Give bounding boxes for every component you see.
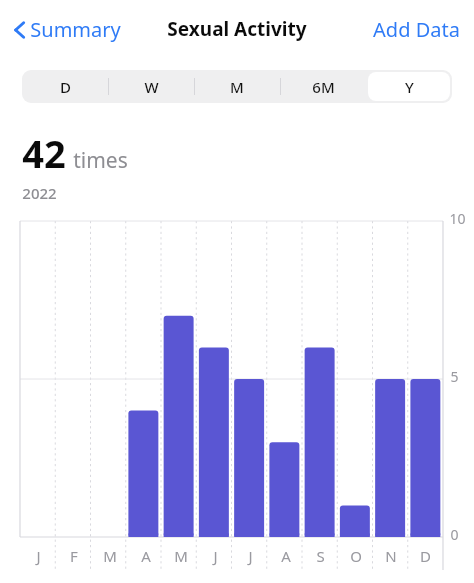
- staticText: 0: [450, 525, 459, 544]
- staticText: D: [60, 77, 71, 97]
- staticText: A: [281, 546, 291, 566]
- staticText: F: [70, 546, 78, 566]
- staticText: D: [420, 546, 431, 566]
- button[interactable]: 6M: [280, 70, 366, 103]
- staticText: 6M: [312, 77, 335, 97]
- staticText: N: [385, 546, 397, 566]
- button[interactable]: W: [108, 70, 194, 103]
- staticText: J: [36, 546, 41, 566]
- button[interactable]: Add Data: [371, 10, 462, 49]
- staticText: A: [141, 546, 151, 566]
- staticText: Add Data: [373, 16, 460, 43]
- staticText: W: [144, 77, 159, 97]
- staticText: O: [350, 546, 362, 566]
- button[interactable]: D: [22, 70, 108, 103]
- staticText: M: [230, 77, 244, 97]
- button[interactable]: Y: [366, 70, 452, 103]
- button[interactable]: Summary: [10, 10, 124, 49]
- staticText: Summary: [30, 16, 121, 43]
- staticText: Sexual Activity: [167, 16, 307, 42]
- staticText: J: [213, 546, 218, 566]
- staticText: 5: [450, 367, 459, 386]
- button[interactable]: M: [194, 70, 280, 103]
- staticText: M: [174, 546, 188, 566]
- staticText: M: [103, 546, 117, 566]
- staticText: 10: [449, 209, 466, 228]
- staticText: 2022: [22, 183, 57, 203]
- staticText: J: [248, 546, 253, 566]
- staticText: S: [316, 546, 325, 566]
- staticText: 42: [22, 127, 66, 179]
- staticText: Y: [405, 77, 414, 97]
- staticText: times: [73, 146, 128, 175]
